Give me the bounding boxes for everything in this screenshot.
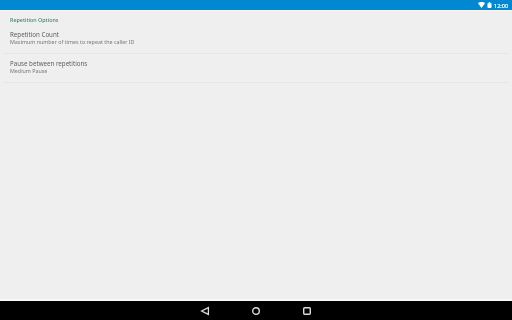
staticText: 12:00	[494, 2, 509, 9]
button[interactable]: Recent apps	[295, 301, 319, 320]
staticText: Maximum number of times to repeat the ca…	[10, 38, 135, 45]
staticText: Repetition Count	[10, 30, 60, 38]
button[interactable]: Pause between repetitions	[0, 54, 512, 82]
staticText: Pause between repetitions	[10, 59, 88, 67]
button[interactable]: Home	[244, 301, 268, 320]
staticText: Repetition Options	[10, 16, 59, 23]
button[interactable]: Repetition Count	[0, 27, 512, 53]
staticText: Medium Pause	[10, 67, 48, 74]
button[interactable]: Back	[193, 301, 217, 320]
